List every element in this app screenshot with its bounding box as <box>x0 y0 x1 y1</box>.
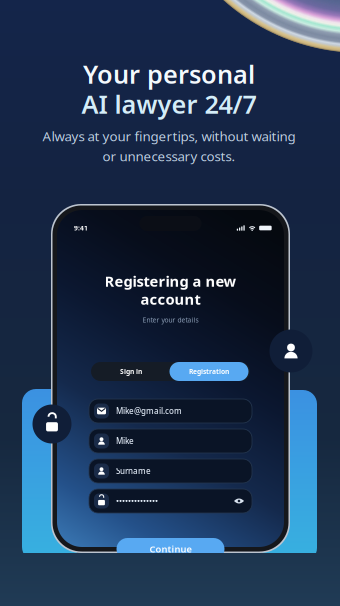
button[interactable]: Surname <box>89 459 252 483</box>
staticText: 9:41 <box>74 224 88 232</box>
button[interactable]: Mike@gmail.com <box>89 399 252 423</box>
staticText: AI lawyer 24/7 <box>81 87 256 121</box>
button[interactable]: •••••••••••••• <box>89 489 252 513</box>
staticText: or unnecessary costs. <box>102 147 235 165</box>
staticText: Registration <box>189 367 229 376</box>
staticText: •••••••••••••• <box>116 496 158 506</box>
staticText: Enter your details <box>142 316 198 324</box>
staticText: Your personal <box>83 57 255 91</box>
staticText: Continue <box>149 543 191 555</box>
staticText: Registering a new <box>104 271 236 291</box>
staticText: Mike <box>116 436 134 446</box>
button[interactable]: Sign in <box>92 362 169 381</box>
staticText: account <box>140 289 200 309</box>
staticText: Mike@gmail.com <box>116 406 182 416</box>
staticText: Always at your fingertips, without waiti… <box>42 127 295 145</box>
staticText: Surname <box>116 466 151 476</box>
button[interactable]: Continue <box>116 538 224 560</box>
button[interactable]: Registration <box>169 362 248 381</box>
staticText: Sign in <box>120 367 142 376</box>
button[interactable]: Mike <box>89 429 252 453</box>
